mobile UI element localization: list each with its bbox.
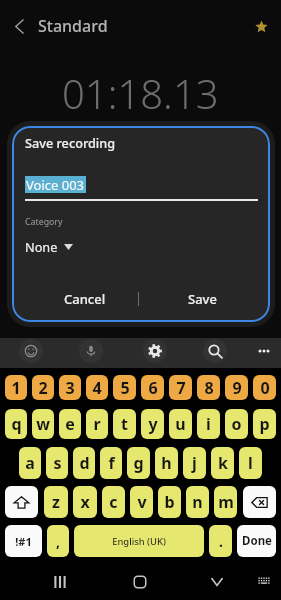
button[interactable]: h (155, 447, 178, 479)
staticText: a (25, 452, 35, 474)
button[interactable]: Search (202, 338, 228, 364)
button[interactable]: t (113, 409, 136, 439)
staticText: q (11, 413, 22, 435)
staticText: Standard (38, 15, 108, 37)
button[interactable]: None (25, 238, 73, 255)
staticText: d (79, 452, 90, 474)
button[interactable]: Settings (142, 338, 168, 364)
staticText: r (93, 413, 101, 435)
staticText: f (108, 452, 115, 474)
button[interactable]: c (102, 486, 125, 518)
button[interactable]: f (100, 447, 122, 479)
button[interactable]: i (197, 409, 220, 439)
staticText: 9 (232, 377, 242, 399)
staticText: 3 (65, 377, 75, 399)
staticText: y (148, 413, 158, 435)
staticText: s (53, 452, 62, 474)
button[interactable]: 5 (113, 375, 136, 400)
staticText: Voice 003 (26, 176, 85, 193)
button[interactable]: Switch keyboard (252, 570, 276, 594)
button[interactable]: g (127, 447, 150, 479)
staticText: m (218, 491, 234, 513)
button[interactable]: 3 (59, 375, 81, 400)
button[interactable]: j (183, 447, 206, 479)
button[interactable]: Cancel (22, 280, 148, 318)
button[interactable]: Emoji (18, 338, 44, 364)
button[interactable]: Save (138, 280, 266, 318)
staticText: l (248, 452, 253, 474)
button[interactable]: z (44, 486, 68, 518)
staticText: 01:18.13 (62, 66, 219, 112)
staticText: . (219, 532, 223, 551)
staticText: 6 (148, 377, 158, 399)
staticText: w (36, 413, 50, 435)
button[interactable]: m (214, 486, 237, 518)
button[interactable]: y (141, 409, 164, 439)
button[interactable]: d (73, 447, 95, 479)
button[interactable]: Recent apps (48, 570, 72, 594)
button[interactable]: e (59, 409, 81, 439)
button[interactable]: r (86, 409, 108, 439)
staticText: , (56, 532, 60, 551)
button[interactable]: Home (128, 570, 152, 594)
staticText: 8 (204, 377, 214, 399)
button[interactable]: English (UK) (74, 525, 204, 557)
button[interactable]: o (225, 409, 248, 439)
button[interactable]: Favourite (241, 0, 281, 52)
button[interactable]: More options (251, 338, 277, 364)
button[interactable]: !#1 (5, 525, 42, 557)
button[interactable]: Standard (38, 0, 241, 52)
staticText: o (231, 413, 242, 435)
button[interactable]: q (5, 409, 27, 439)
staticText: English (UK) (112, 535, 166, 548)
button[interactable]: v (130, 486, 153, 518)
button[interactable]: a (19, 447, 41, 479)
button[interactable]: Hide keyboard (205, 570, 229, 594)
staticText: None (25, 238, 58, 255)
staticText: h (161, 452, 172, 474)
button[interactable]: 2 (32, 375, 54, 400)
staticText: c (109, 491, 118, 513)
staticText: e (65, 413, 75, 435)
staticText: !#1 (15, 534, 32, 549)
staticText: Cancel (64, 290, 106, 308)
staticText: j (192, 452, 197, 474)
staticText: x (80, 491, 90, 513)
button[interactable]: s (46, 447, 68, 479)
button[interactable]: Shift (5, 486, 38, 518)
button[interactable]: Backspace (243, 486, 276, 518)
staticText: 5 (120, 377, 130, 399)
button[interactable]: k (211, 447, 234, 479)
button[interactable]: 1 (5, 375, 27, 400)
button[interactable]: 7 (169, 375, 192, 400)
button[interactable]: p (253, 409, 276, 439)
button[interactable]: . (209, 525, 232, 557)
staticText: k (218, 452, 228, 474)
button[interactable]: 8 (197, 375, 220, 400)
staticText: g (133, 452, 144, 474)
staticText: 7 (176, 377, 186, 399)
staticText: Category (25, 216, 63, 228)
button[interactable]: Done (237, 525, 276, 557)
button[interactable]: n (186, 486, 209, 518)
staticText: u (175, 413, 186, 435)
button[interactable]: b (158, 486, 181, 518)
button[interactable]: 4 (86, 375, 108, 400)
button[interactable]: l (239, 447, 262, 479)
staticText: 1 (11, 377, 21, 399)
button[interactable]: Voice input (78, 338, 104, 364)
button[interactable]: 9 (225, 375, 248, 400)
staticText: b (164, 491, 175, 513)
button[interactable]: w (32, 409, 54, 439)
staticText: t (121, 413, 128, 435)
staticText: n (192, 491, 203, 513)
button[interactable]: , (47, 525, 69, 557)
button[interactable]: 6 (141, 375, 164, 400)
staticText: z (52, 491, 60, 513)
staticText: i (206, 413, 211, 435)
button[interactable]: x (73, 486, 97, 518)
button[interactable]: u (169, 409, 192, 439)
button[interactable]: 0 (253, 375, 276, 400)
button[interactable]: Back (0, 0, 38, 52)
staticText: 0 (260, 377, 270, 399)
